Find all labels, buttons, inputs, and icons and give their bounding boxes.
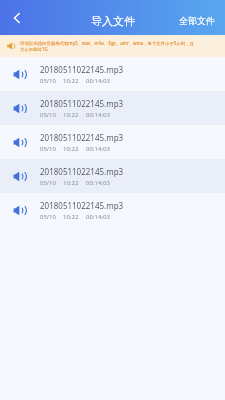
staticText: 导入文件: [91, 14, 135, 28]
button[interactable]: 20180511022145.mp3: [0, 57, 225, 91]
staticText: 05/10: [40, 213, 56, 221]
staticText: 00:14:03: [86, 77, 110, 85]
staticText: 20180511022145.mp3: [40, 98, 124, 109]
staticText: 20180511022145.mp3: [40, 200, 124, 211]
button[interactable]: 20180511022145.mp3: [0, 159, 225, 193]
staticText: 10:22: [63, 145, 79, 153]
staticText: 00:14:03: [86, 213, 110, 221]
staticText: 05/10: [40, 179, 56, 187]
staticText: 20180511022145.mp3: [40, 132, 124, 143]
button[interactable]: Back: [2, 3, 32, 33]
staticText: 全部文件: [179, 15, 215, 26]
staticText: 00:14:03: [86, 111, 110, 119]
staticText: 20180511022145.mp3: [40, 64, 124, 75]
staticText: 00:14:03: [86, 145, 110, 153]
button[interactable]: 全部文件: [175, 12, 219, 29]
button[interactable]: 20180511022145.mp3: [0, 125, 225, 159]
staticText: 大小不能过1G: [20, 46, 48, 52]
staticText: 05/10: [40, 77, 56, 85]
staticText: 05/10: [40, 111, 56, 119]
button[interactable]: 20180511022145.mp3: [0, 193, 225, 227]
staticText: 10:22: [63, 179, 79, 187]
staticText: 00:14:03: [86, 179, 110, 187]
staticText: 20180511022145.mp3: [40, 166, 124, 177]
staticText: 10:22: [63, 213, 79, 221]
staticText: 05/10: [40, 145, 56, 153]
staticText: 10:22: [63, 111, 79, 119]
staticText: 目前仅支持的音频格式有mp3、wav、m4a、3gp、amr、wma，单个文件小…: [20, 40, 194, 46]
staticText: 10:22: [63, 77, 79, 85]
button[interactable]: 20180511022145.mp3: [0, 91, 225, 125]
